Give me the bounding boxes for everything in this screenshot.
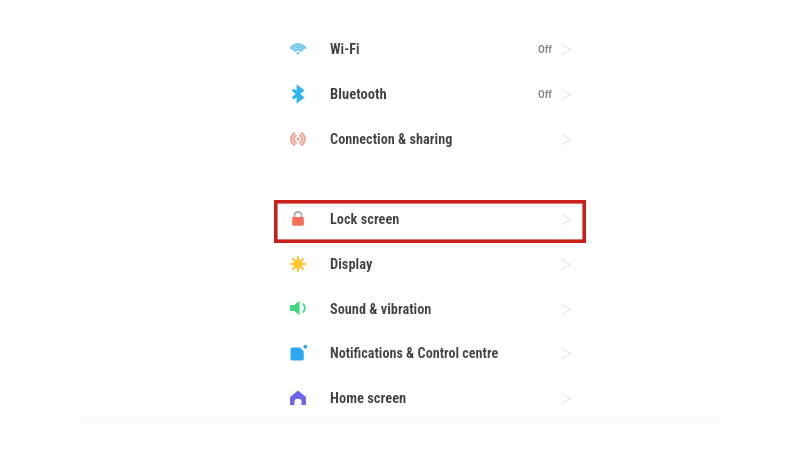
staticText: Notifications & Control centre — [330, 345, 499, 362]
button[interactable]: Wi-Fi — [80, 31, 721, 67]
other: Open Sound & vibration — [561, 304, 572, 315]
staticText: Connection & sharing — [330, 131, 453, 148]
button[interactable]: Display — [80, 246, 721, 282]
staticText: Display — [330, 256, 373, 273]
other: Open Bluetooth — [561, 89, 572, 100]
other: Open Notifications & Control centre — [561, 348, 572, 359]
button[interactable]: Lock screen — [80, 201, 721, 237]
button[interactable]: Sound & vibration — [80, 291, 721, 327]
staticText: Off — [538, 43, 553, 55]
staticText: Off — [538, 88, 553, 100]
other: Open Home screen — [561, 393, 572, 404]
staticText: Lock screen — [330, 211, 400, 228]
button[interactable]: Home screen — [80, 380, 721, 416]
button[interactable]: Bluetooth — [80, 76, 721, 112]
staticText: Sound & vibration — [330, 301, 432, 318]
other: Highlighted: Lock screen — [274, 200, 586, 243]
other: Open Lock screen — [561, 214, 572, 225]
staticText: Wi-Fi — [330, 41, 360, 58]
button[interactable]: Notifications & Control centre — [80, 335, 721, 371]
other: Open Wi-Fi — [561, 44, 572, 55]
button[interactable]: Connection & sharing — [80, 121, 721, 157]
other: Open Display — [561, 259, 572, 270]
staticText: Home screen — [330, 390, 407, 407]
staticText: Bluetooth — [330, 86, 387, 103]
other: Open Connection & sharing — [561, 134, 572, 145]
